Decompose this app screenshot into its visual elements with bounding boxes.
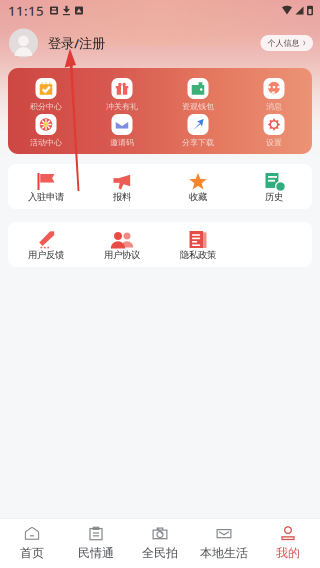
button[interactable]: 用户协议 bbox=[84, 231, 160, 262]
button[interactable]: 设置 bbox=[236, 114, 312, 150]
staticText: 积分中心 bbox=[30, 102, 62, 111]
button[interactable]: 登录/注册 bbox=[0, 28, 105, 57]
staticText: 收藏 bbox=[189, 191, 207, 203]
button[interactable]: 首页 bbox=[0, 518, 64, 568]
staticText: 消息 bbox=[266, 102, 282, 111]
button[interactable]: 冲关有礼 bbox=[84, 78, 160, 114]
staticText: 全民拍 bbox=[142, 546, 178, 560]
button[interactable]: 民情通 bbox=[64, 518, 128, 568]
staticText: 报料 bbox=[113, 191, 131, 203]
staticText: 邀请码 bbox=[110, 138, 134, 147]
staticText: 用户协议 bbox=[104, 249, 140, 261]
button[interactable]: 消息 bbox=[236, 78, 312, 114]
button[interactable]: 报料 bbox=[84, 173, 160, 204]
staticText: 本地生活 bbox=[200, 546, 248, 560]
button[interactable]: 用户反馈 bbox=[8, 231, 84, 262]
staticText: 用户反馈 bbox=[28, 249, 64, 261]
staticText: 个人信息 bbox=[267, 38, 299, 48]
staticText: 民情通 bbox=[78, 546, 114, 560]
staticText: 登录/注册 bbox=[48, 34, 105, 52]
staticText: 11:15 bbox=[8, 2, 44, 19]
staticText: 冲关有礼 bbox=[106, 102, 138, 111]
staticText: 设置 bbox=[266, 138, 282, 147]
button[interactable]: 隐私政策 bbox=[160, 231, 236, 262]
button[interactable]: 全民拍 bbox=[128, 518, 192, 568]
button[interactable]: 积分中心 bbox=[8, 78, 84, 114]
staticText: 资观钱包 bbox=[182, 102, 214, 111]
staticText: 入驻申请 bbox=[28, 191, 64, 203]
button[interactable]: 历史 bbox=[236, 173, 312, 204]
staticText: 隐私政策 bbox=[180, 249, 216, 261]
button[interactable]: 本地生活 bbox=[192, 518, 256, 568]
button[interactable]: 我的 bbox=[256, 518, 320, 568]
button[interactable]: 活动中心 bbox=[8, 114, 84, 150]
button[interactable]: 个人信息 bbox=[260, 35, 320, 51]
button[interactable]: 资观钱包 bbox=[160, 78, 236, 114]
staticText: 我的 bbox=[276, 546, 300, 560]
button[interactable]: 邀请码 bbox=[84, 114, 160, 150]
button[interactable]: 分享下载 bbox=[160, 114, 236, 150]
staticText: 活动中心 bbox=[30, 138, 62, 147]
staticText: 首页 bbox=[20, 546, 44, 560]
button[interactable]: 入驻申请 bbox=[8, 173, 84, 204]
staticText: 历史 bbox=[265, 191, 283, 203]
button[interactable]: 收藏 bbox=[160, 173, 236, 204]
staticText: 分享下载 bbox=[182, 138, 214, 147]
